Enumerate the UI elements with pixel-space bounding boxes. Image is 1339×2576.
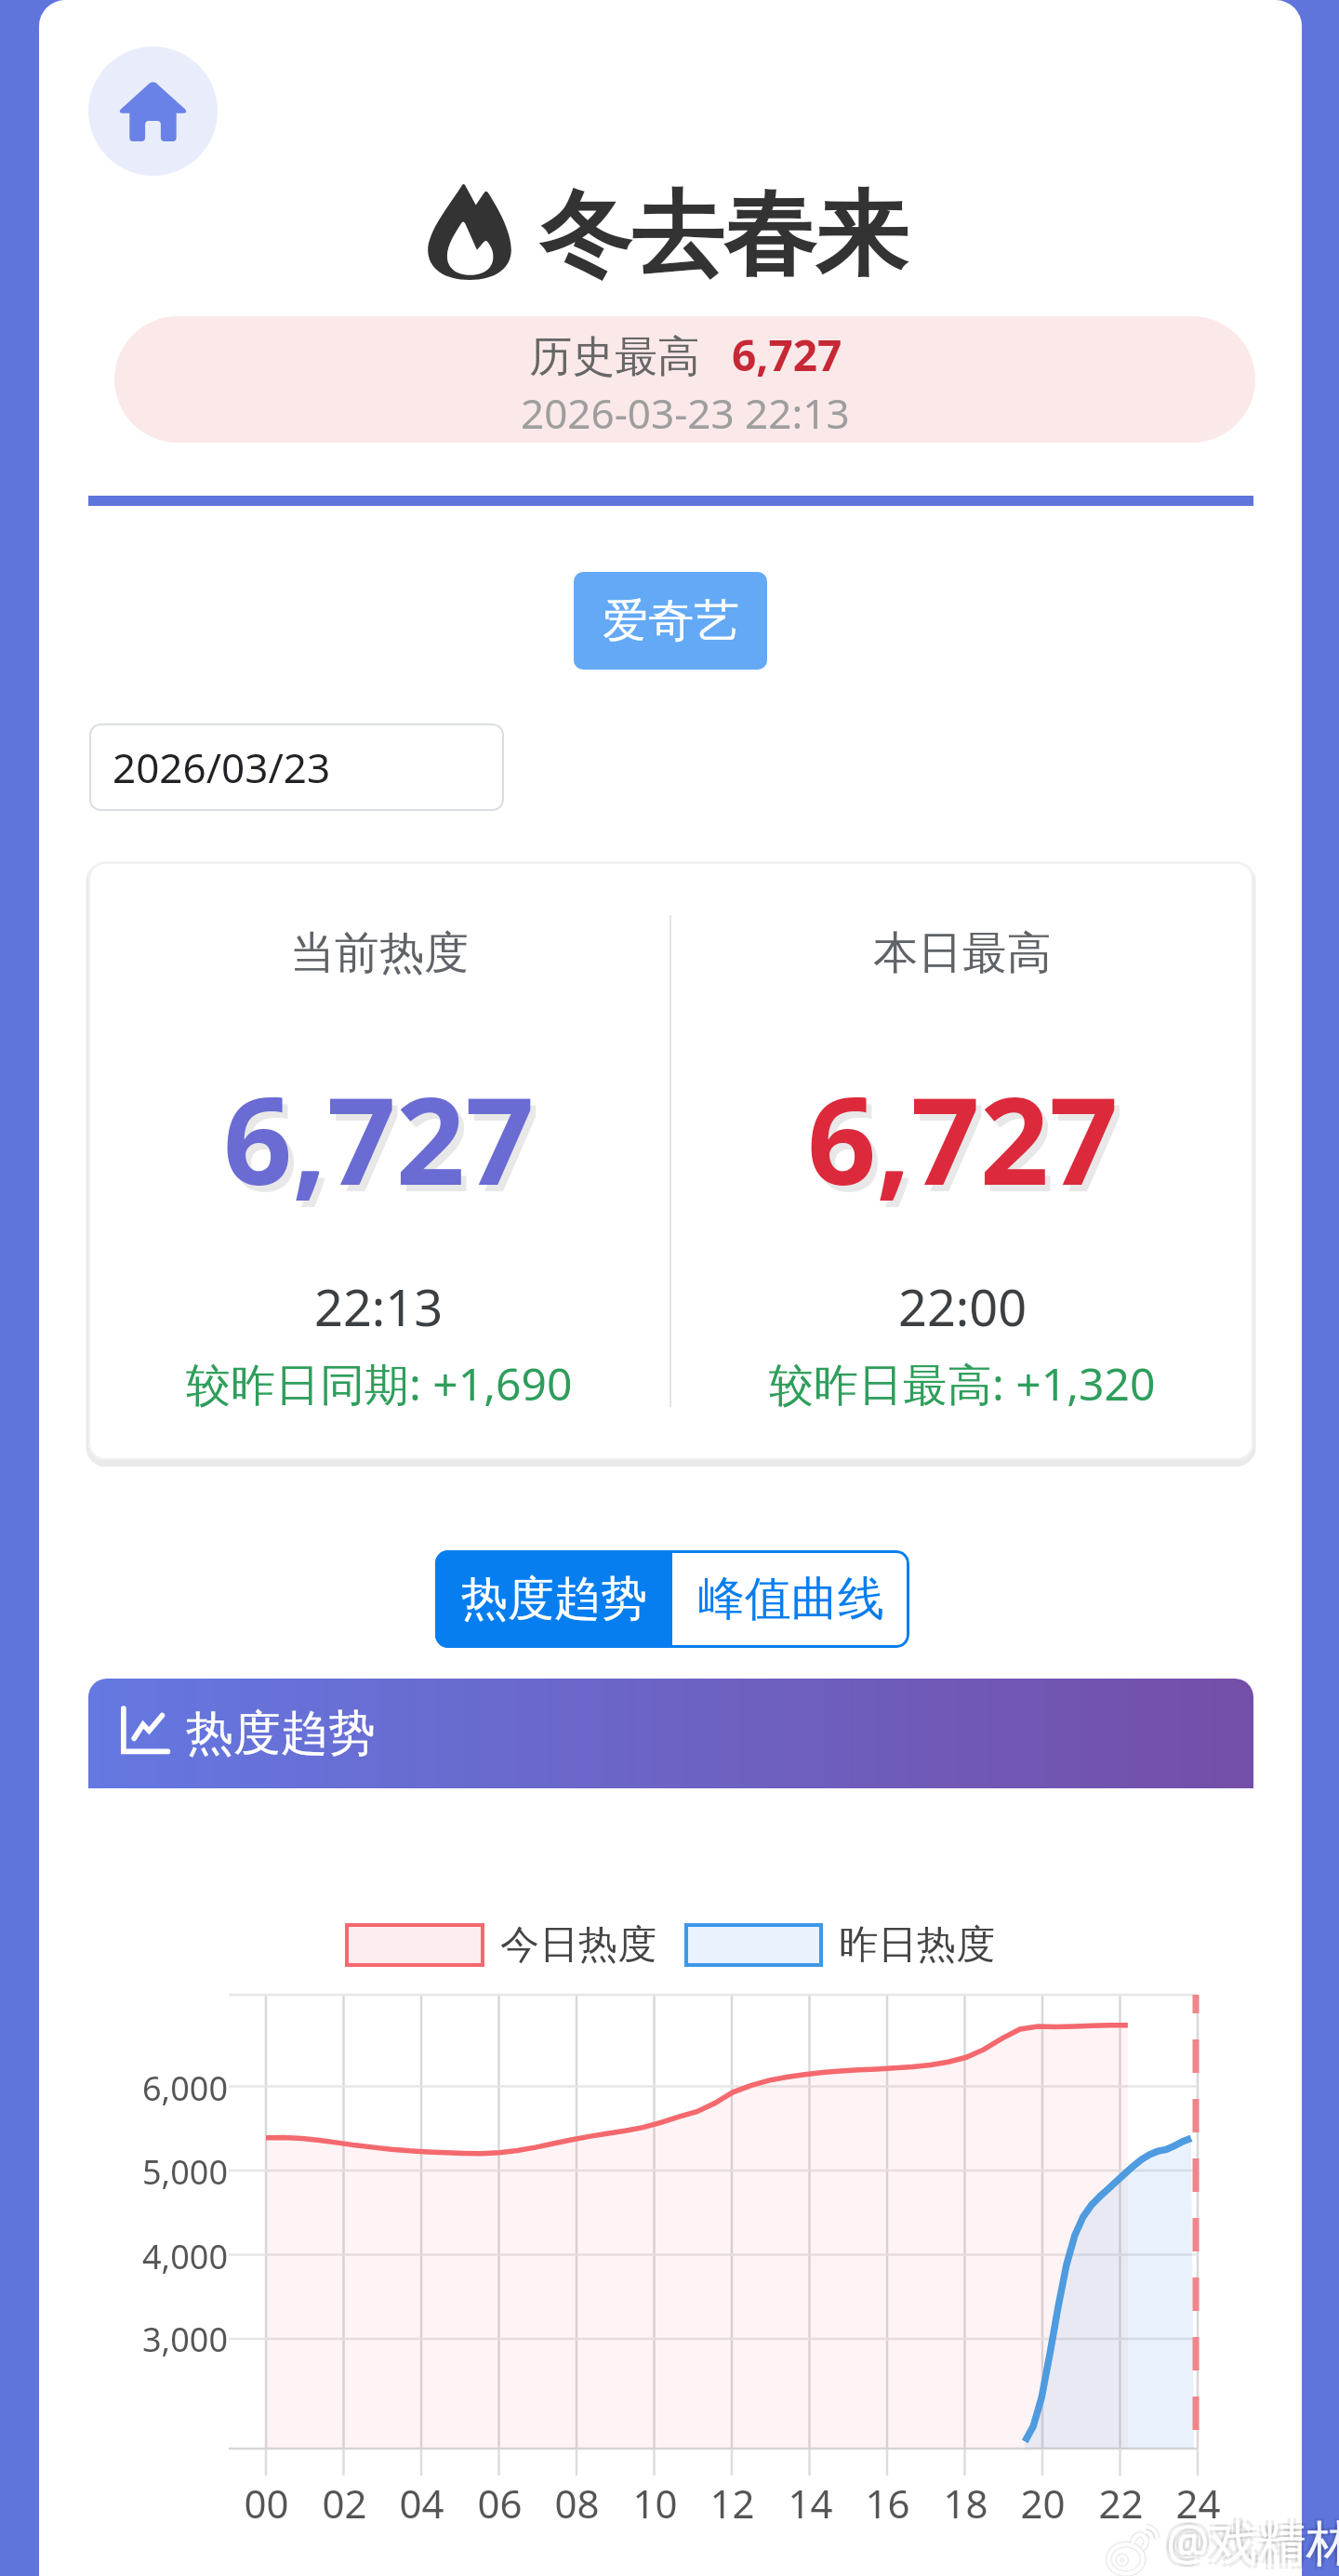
staticText: 06 bbox=[477, 2476, 523, 2530]
staticText: 2026/03/23 bbox=[113, 739, 331, 795]
staticText: 今日热度 bbox=[500, 1920, 656, 1970]
button[interactable]: 爱奇艺 bbox=[574, 572, 767, 670]
staticText: 14 bbox=[788, 2476, 833, 2530]
staticText: 历史最高 bbox=[529, 330, 700, 384]
staticText: 6,000 bbox=[141, 2065, 228, 2111]
staticText: 3,000 bbox=[141, 2317, 228, 2362]
staticText: 本日最高 bbox=[873, 925, 1052, 981]
staticText: 爱奇艺 bbox=[603, 592, 739, 650]
staticText: 峰值曲线 bbox=[698, 1570, 884, 1628]
staticText: 22:13 bbox=[314, 1272, 444, 1341]
staticText: 08 bbox=[554, 2476, 600, 2530]
staticText: 24 bbox=[1175, 2476, 1221, 2530]
staticText: 02 bbox=[322, 2476, 367, 2530]
button[interactable]: Home bbox=[88, 46, 218, 176]
staticText: 较昨日同期: +1,690 bbox=[186, 1353, 573, 1414]
staticText: 6,727 bbox=[732, 325, 842, 384]
staticText: 20 bbox=[1020, 2476, 1066, 2530]
button[interactable]: 2026/03/23 bbox=[89, 724, 504, 811]
staticText: 当前热度 bbox=[290, 925, 469, 981]
staticText: 热度趋势 bbox=[186, 1704, 376, 1763]
staticText: 10 bbox=[632, 2476, 678, 2530]
staticText: 22:00 bbox=[898, 1272, 1027, 1341]
staticText: 6,727 bbox=[223, 1056, 535, 1220]
staticText: 00 bbox=[244, 2476, 289, 2530]
staticText: 16 bbox=[865, 2476, 910, 2530]
staticText: 04 bbox=[399, 2476, 444, 2530]
staticText: 冬去春来 bbox=[539, 178, 908, 294]
staticText: @戏精林克 bbox=[1166, 2508, 1339, 2574]
staticText: 6,727 bbox=[229, 1062, 540, 1227]
staticText: 较昨日最高: +1,320 bbox=[769, 1353, 1156, 1414]
staticText: @戏精林克 bbox=[1169, 2511, 1339, 2576]
staticText: @戏精林克 bbox=[1163, 2505, 1339, 2571]
button[interactable]: 峰值曲线 bbox=[672, 1550, 909, 1648]
staticText: 18 bbox=[943, 2476, 988, 2530]
staticText: 6,727 bbox=[813, 1062, 1124, 1227]
staticText: @戏精林克 bbox=[1169, 2505, 1339, 2571]
staticText: 5,000 bbox=[141, 2149, 228, 2195]
staticText: 12 bbox=[709, 2476, 755, 2530]
staticText: 6,727 bbox=[807, 1056, 1119, 1220]
staticText: 昨日热度 bbox=[839, 1920, 995, 1970]
staticText: 热度趋势 bbox=[461, 1570, 647, 1628]
staticText: @戏精林克 bbox=[1163, 2511, 1339, 2576]
staticText: 2026-03-23 22:13 bbox=[521, 385, 850, 441]
staticText: 4,000 bbox=[141, 2234, 228, 2279]
button[interactable]: 热度趋势 bbox=[435, 1550, 672, 1648]
staticText: 22 bbox=[1098, 2476, 1144, 2530]
